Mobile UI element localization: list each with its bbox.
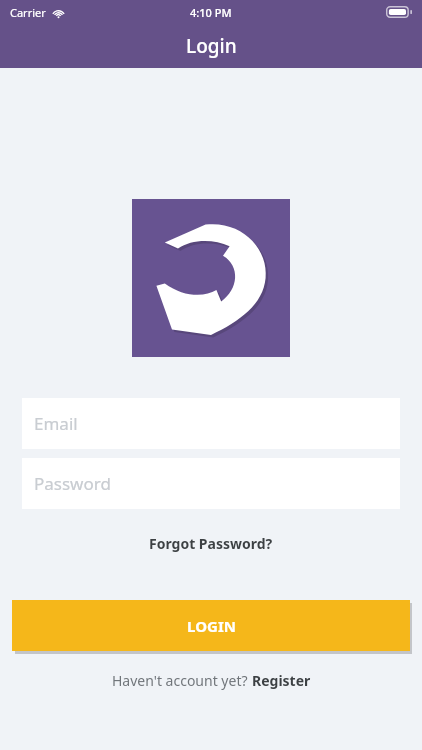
staticText: 4:10 PM [190, 5, 232, 20]
staticText: Forgot Password? [149, 534, 273, 553]
staticText: Email [34, 412, 78, 435]
other: Wi-Fi [52, 8, 65, 18]
staticText: Password [34, 472, 111, 495]
button[interactable]: LOGIN [12, 600, 410, 651]
staticText: LOGIN [187, 616, 236, 636]
staticText: Login [186, 33, 237, 59]
button[interactable]: Email [22, 398, 400, 449]
staticText: Carrier [10, 5, 46, 20]
button[interactable]: Forgot Password? [139, 530, 283, 557]
button[interactable]: Haven't account yet? [102, 667, 321, 694]
staticText: Haven't account yet? [112, 671, 252, 690]
other: Battery [386, 6, 412, 18]
button[interactable]: Password [22, 458, 400, 509]
staticText: Register [252, 671, 311, 690]
